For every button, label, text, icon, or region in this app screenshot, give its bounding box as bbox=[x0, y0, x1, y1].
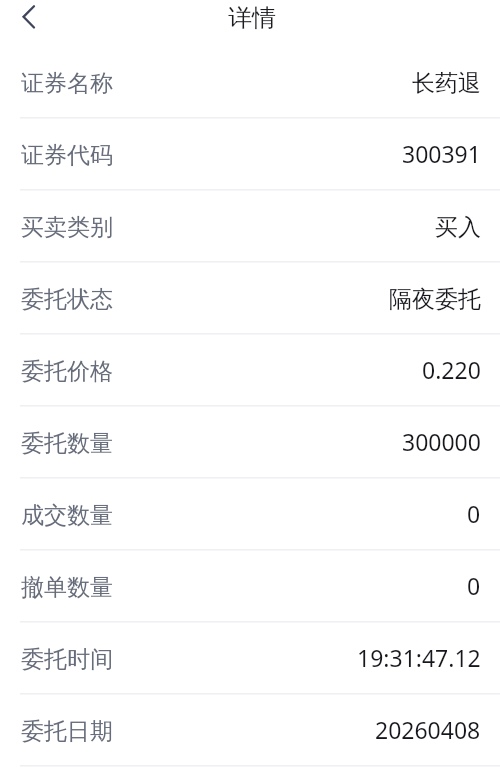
button[interactable]: 委托数量 bbox=[0, 407, 500, 479]
staticText: 详情 bbox=[228, 3, 276, 33]
button[interactable]: 买卖类别 bbox=[0, 191, 500, 263]
button[interactable]: 委托状态 bbox=[0, 263, 500, 335]
staticText: 证券代码 bbox=[21, 141, 113, 170]
staticText: 委托日期 bbox=[21, 717, 113, 746]
staticText: 买入 bbox=[435, 213, 481, 242]
staticText: 证券名称 bbox=[21, 69, 113, 98]
staticText: 隔夜委托 bbox=[389, 285, 481, 314]
staticText: 撤单数量 bbox=[21, 573, 113, 602]
button[interactable]: 证券名称 bbox=[0, 47, 500, 119]
button[interactable]: 委托价格 bbox=[0, 335, 500, 407]
staticText: 委托价格 bbox=[21, 357, 113, 386]
staticText: 300391 bbox=[402, 138, 481, 169]
staticText: 委托数量 bbox=[21, 429, 113, 458]
staticText: 长药退 bbox=[412, 69, 481, 98]
button[interactable]: 撤单数量 bbox=[0, 551, 500, 623]
staticText: 20260408 bbox=[375, 714, 481, 745]
button[interactable]: 成交数量 bbox=[0, 479, 500, 551]
button[interactable]: Back bbox=[0, 0, 48, 34]
staticText: 19:31:47.12 bbox=[357, 642, 481, 673]
staticText: 委托状态 bbox=[21, 285, 113, 314]
staticText: 0 bbox=[467, 570, 481, 601]
button[interactable]: 证券代码 bbox=[0, 119, 500, 191]
staticText: 0.220 bbox=[422, 354, 481, 385]
button[interactable]: 委托时间 bbox=[0, 623, 500, 695]
button[interactable]: 委托日期 bbox=[0, 695, 500, 767]
staticText: 300000 bbox=[402, 426, 481, 457]
staticText: 买卖类别 bbox=[21, 213, 113, 242]
staticText: 0 bbox=[467, 498, 481, 529]
staticText: 成交数量 bbox=[21, 501, 113, 530]
staticText: 委托时间 bbox=[21, 645, 113, 674]
